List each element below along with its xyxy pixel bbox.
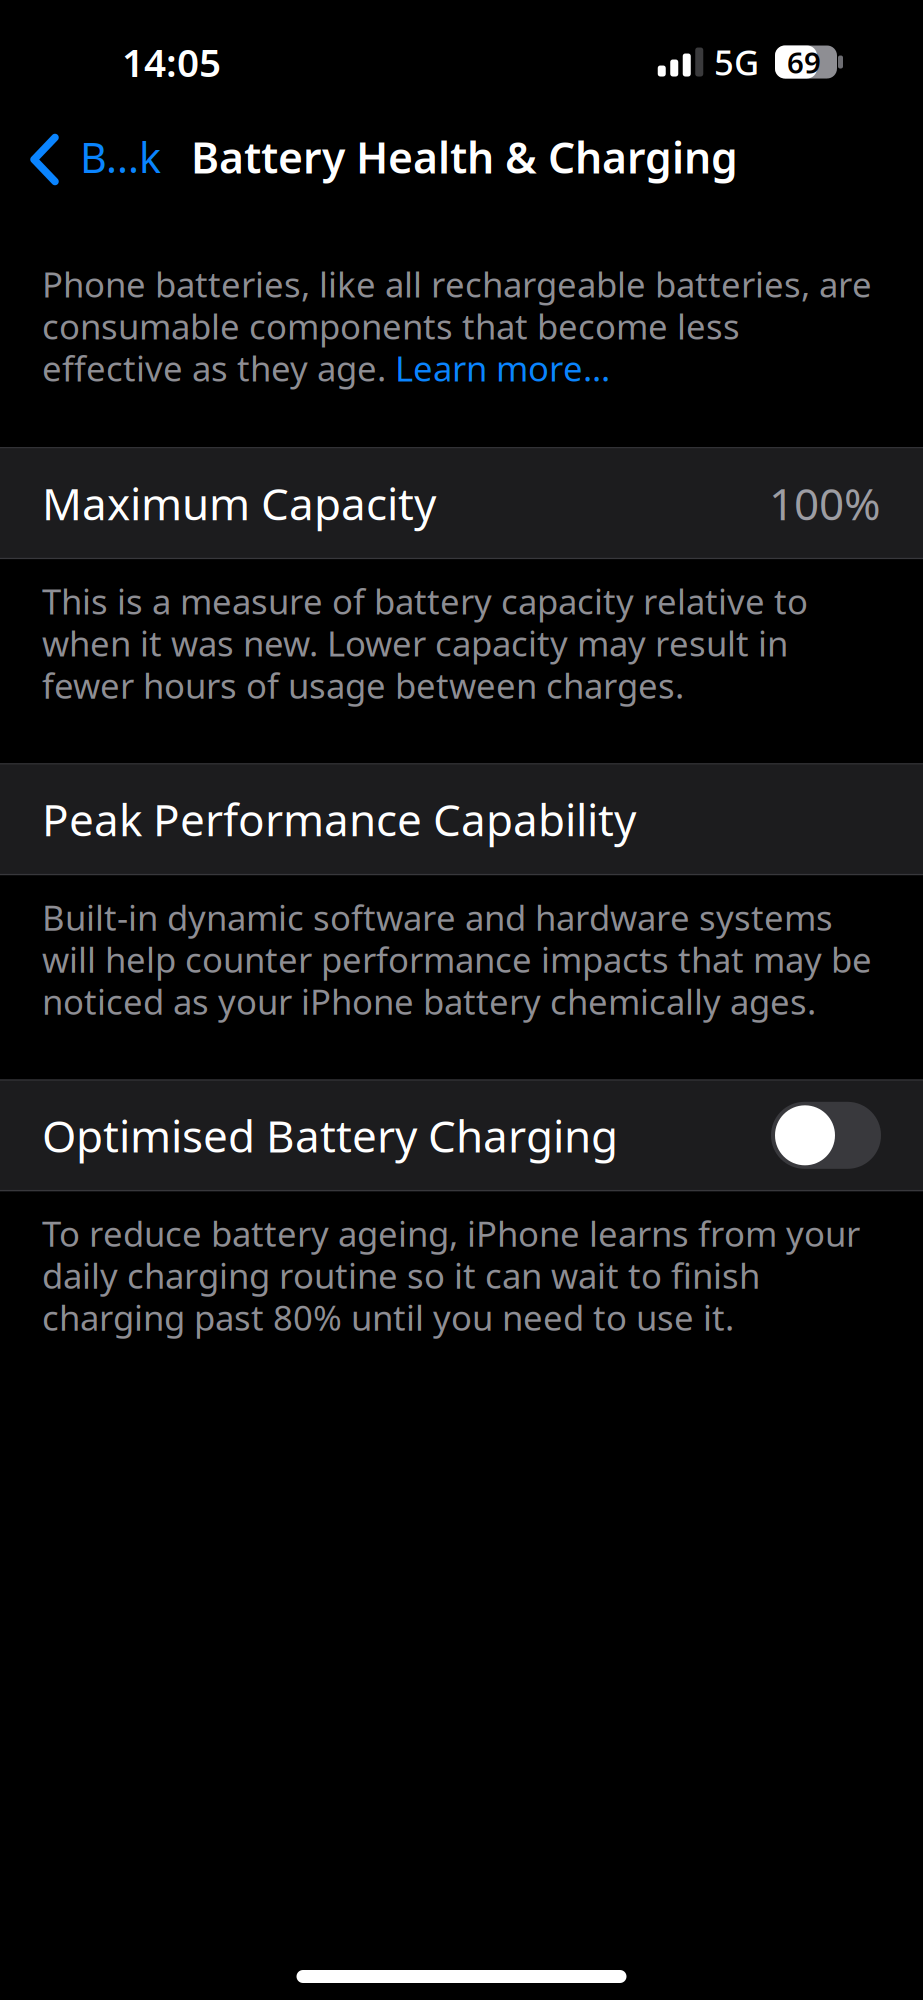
staticText: 69 (787, 42, 821, 81)
staticText: 100% (769, 474, 881, 532)
staticText: 14:05 (122, 36, 221, 88)
staticText: 5G (714, 39, 759, 85)
staticText: Phone batteries, like all rechargeable b… (42, 261, 872, 391)
staticText: This is a measure of battery capacity re… (42, 578, 808, 708)
button[interactable]: Optimised Battery Charging (771, 1102, 881, 1169)
staticText: Maximum Capacity (42, 474, 436, 532)
staticText: Battery Health & Charging (191, 129, 738, 185)
staticText: Built-in dynamic software and hardware s… (42, 894, 872, 1024)
button[interactable]: Peak Performance Capability (0, 763, 923, 875)
staticText: Peak Performance Capability (42, 790, 636, 848)
staticText: Optimised Battery Charging (42, 1106, 618, 1164)
staticText: To reduce battery ageing, iPhone learns … (42, 1210, 860, 1340)
button[interactable]: Maximum Capacity (0, 447, 923, 559)
button[interactable]: B...k (0, 120, 171, 194)
staticText: B...k (80, 130, 161, 184)
